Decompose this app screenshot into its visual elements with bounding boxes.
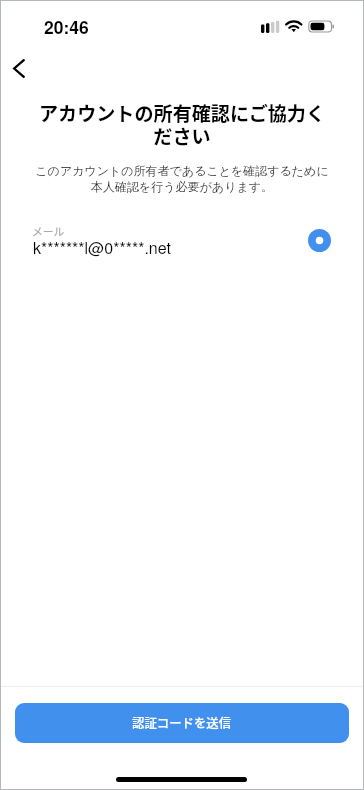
button[interactable]: 認証コードを送信 <box>15 703 349 743</box>
staticText: k*******l@0*****.net <box>33 236 171 259</box>
staticText: メール <box>32 223 65 239</box>
staticText: このアカウントの所有者であることを確認するために本人確認を行う必要があります。 <box>34 163 330 195</box>
staticText: 認証コードを送信 <box>132 714 232 732</box>
staticText: アカウントの所有確認にご協力ください <box>35 99 329 150</box>
staticText: 20:46 <box>44 14 89 39</box>
button[interactable]: メール <box>0 223 364 257</box>
button[interactable]: Back <box>5 54 33 82</box>
